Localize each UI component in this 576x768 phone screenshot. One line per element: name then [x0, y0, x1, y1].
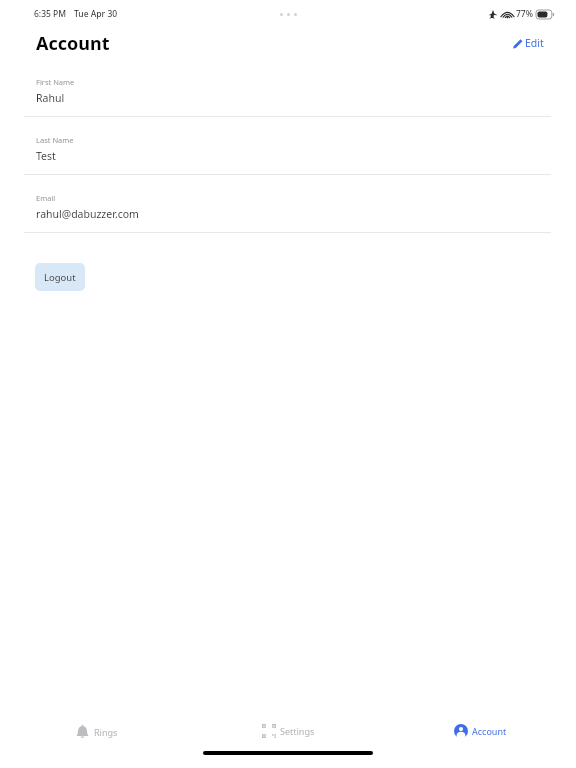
staticText: Logout	[44, 271, 76, 284]
button[interactable]: Rings	[75, 724, 118, 739]
staticText: Rings	[94, 726, 118, 738]
staticText: Account	[36, 31, 110, 56]
other: Edit	[512, 38, 523, 49]
staticText: Tue Apr 30	[74, 8, 118, 20]
staticText: rahul@dabuzzer.com	[36, 207, 139, 221]
staticText: First Name	[36, 77, 75, 87]
button[interactable]: Edit	[512, 36, 544, 50]
button[interactable]: Logout	[35, 263, 85, 291]
staticText: Test	[36, 149, 56, 163]
staticText: 6:35 PM	[34, 8, 67, 20]
button[interactable]: Account	[454, 724, 507, 738]
staticText: 77%	[516, 8, 533, 20]
staticText: Edit	[525, 36, 544, 50]
staticText: Account	[472, 725, 507, 737]
staticText: Settings	[280, 725, 315, 737]
staticText: Rahul	[36, 91, 65, 105]
button[interactable]: Settings	[262, 724, 315, 738]
staticText: Email	[36, 193, 56, 203]
staticText: Last Name	[36, 135, 74, 145]
